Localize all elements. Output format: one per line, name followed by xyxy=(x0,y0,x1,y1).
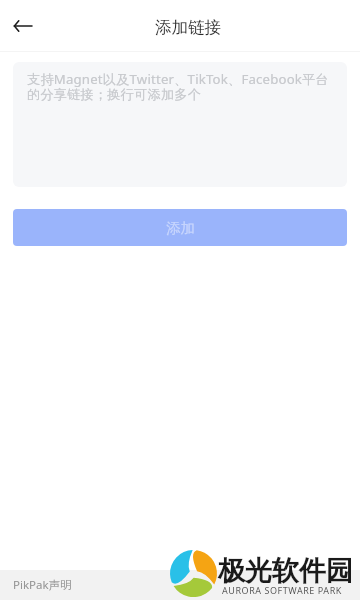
staticText: AURORA SOFTWARE PARK xyxy=(222,584,342,596)
staticText: 支持Magnet以及Twitter、TikTok、Facebook平台的分享链接… xyxy=(27,70,333,103)
staticText: 极光软件园 xyxy=(218,554,353,588)
button[interactable]: 添加 xyxy=(13,209,347,246)
button[interactable]: Back xyxy=(1,4,45,48)
button[interactable]: 支持Magnet以及Twitter、TikTok、Facebook平台的分享链接… xyxy=(13,62,347,187)
staticText: PikPak声明 xyxy=(13,577,72,593)
staticText: 添加 xyxy=(166,219,195,237)
button[interactable]: PikPak声明 xyxy=(0,570,360,600)
staticText: 添加链接 xyxy=(155,17,221,38)
